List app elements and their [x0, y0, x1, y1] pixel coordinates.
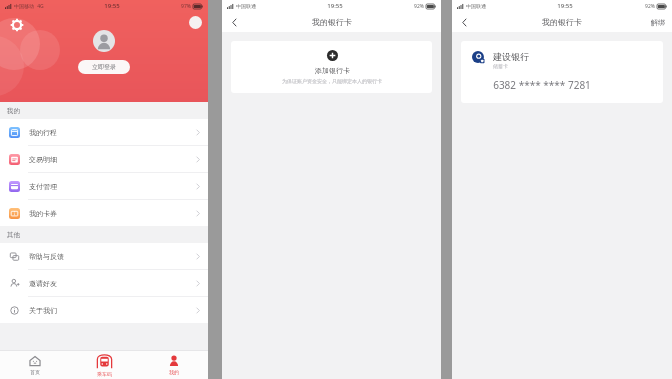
staticText: 19:55 — [327, 2, 343, 10]
staticText: 添加银行卡 — [315, 66, 350, 75]
staticText: 立即登录 — [92, 63, 116, 71]
button[interactable]: Scan — [189, 16, 202, 29]
staticText: 关于我们 — [29, 306, 57, 315]
staticText: 为保证账户资金安全，只能绑定本人的银行卡 — [282, 78, 382, 84]
button[interactable]: 首页 — [0, 350, 70, 379]
staticText: 邀请好友 — [29, 279, 57, 288]
button[interactable]: 乘车码 — [70, 350, 139, 379]
staticText: 帮助与反馈 — [29, 252, 64, 261]
staticText: 其他 — [7, 231, 20, 239]
button[interactable]: 帮助与反馈 — [0, 243, 208, 269]
staticText: 我的卡券 — [29, 209, 57, 218]
button[interactable]: Back — [456, 14, 472, 30]
button[interactable]: 我的 — [139, 350, 208, 379]
staticText: 我的银行卡 — [312, 17, 352, 27]
staticText: 我的行程 — [29, 128, 57, 137]
staticText: 19:55 — [104, 2, 120, 10]
button[interactable]: 我的行程 — [0, 119, 208, 145]
button[interactable]: 关于我们 — [0, 297, 208, 323]
button[interactable]: Back — [226, 14, 242, 30]
staticText: 97% — [181, 3, 191, 10]
staticText: 我的银行卡 — [542, 17, 582, 27]
staticText: 我的 — [7, 107, 20, 115]
staticText: 建设银行 — [493, 51, 529, 62]
button[interactable]: 添加银行卡 — [231, 41, 432, 93]
staticText: 中国移动 — [14, 3, 34, 9]
staticText: 储蓄卡 — [493, 63, 508, 69]
staticText: 92% — [414, 3, 424, 10]
staticText: 支付管理 — [29, 182, 57, 191]
button[interactable]: 交易明细 — [0, 146, 208, 172]
staticText: 我的 — [169, 369, 179, 375]
button[interactable]: 建设银行 — [461, 41, 663, 103]
button[interactable]: 支付管理 — [0, 173, 208, 199]
button[interactable]: 邀请好友 — [0, 270, 208, 296]
button[interactable]: 解绑 — [644, 12, 672, 32]
staticText: 乘车码 — [97, 371, 112, 377]
staticText: 92% — [645, 3, 655, 10]
staticText: 中国联通 — [466, 3, 486, 9]
staticText: 4G — [37, 3, 44, 10]
staticText: 中国联通 — [236, 3, 256, 9]
staticText: 交易明细 — [29, 155, 57, 164]
staticText: 首页 — [30, 369, 40, 375]
button[interactable]: Settings — [8, 16, 26, 34]
button[interactable]: 我的卡券 — [0, 200, 208, 226]
staticText: 19:55 — [557, 2, 573, 10]
staticText: 解绑 — [651, 18, 665, 27]
button[interactable]: 立即登录 — [78, 60, 130, 74]
staticText: 6382 **** **** 7281 — [493, 78, 591, 92]
